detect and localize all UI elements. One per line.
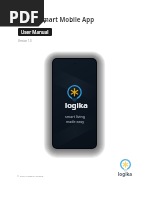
staticText: Version 1.0 <box>18 39 32 43</box>
staticText: Logika Smart Mobile App <box>17 15 95 23</box>
staticText: PDF <box>9 6 39 27</box>
staticText: logika <box>65 100 88 110</box>
staticText: smart living made easy <box>65 114 85 124</box>
button[interactable]: Logika <box>113 159 137 177</box>
button[interactable]: PDF document <box>0 0 48 27</box>
staticText: User Manual <box>21 29 49 35</box>
staticText: logika <box>118 171 133 177</box>
button[interactable]: User Manual <box>21 29 49 35</box>
staticText: © 2024 Logika Limited <box>17 174 44 177</box>
